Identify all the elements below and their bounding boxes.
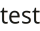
staticText: test: [0, 0, 40, 30]
